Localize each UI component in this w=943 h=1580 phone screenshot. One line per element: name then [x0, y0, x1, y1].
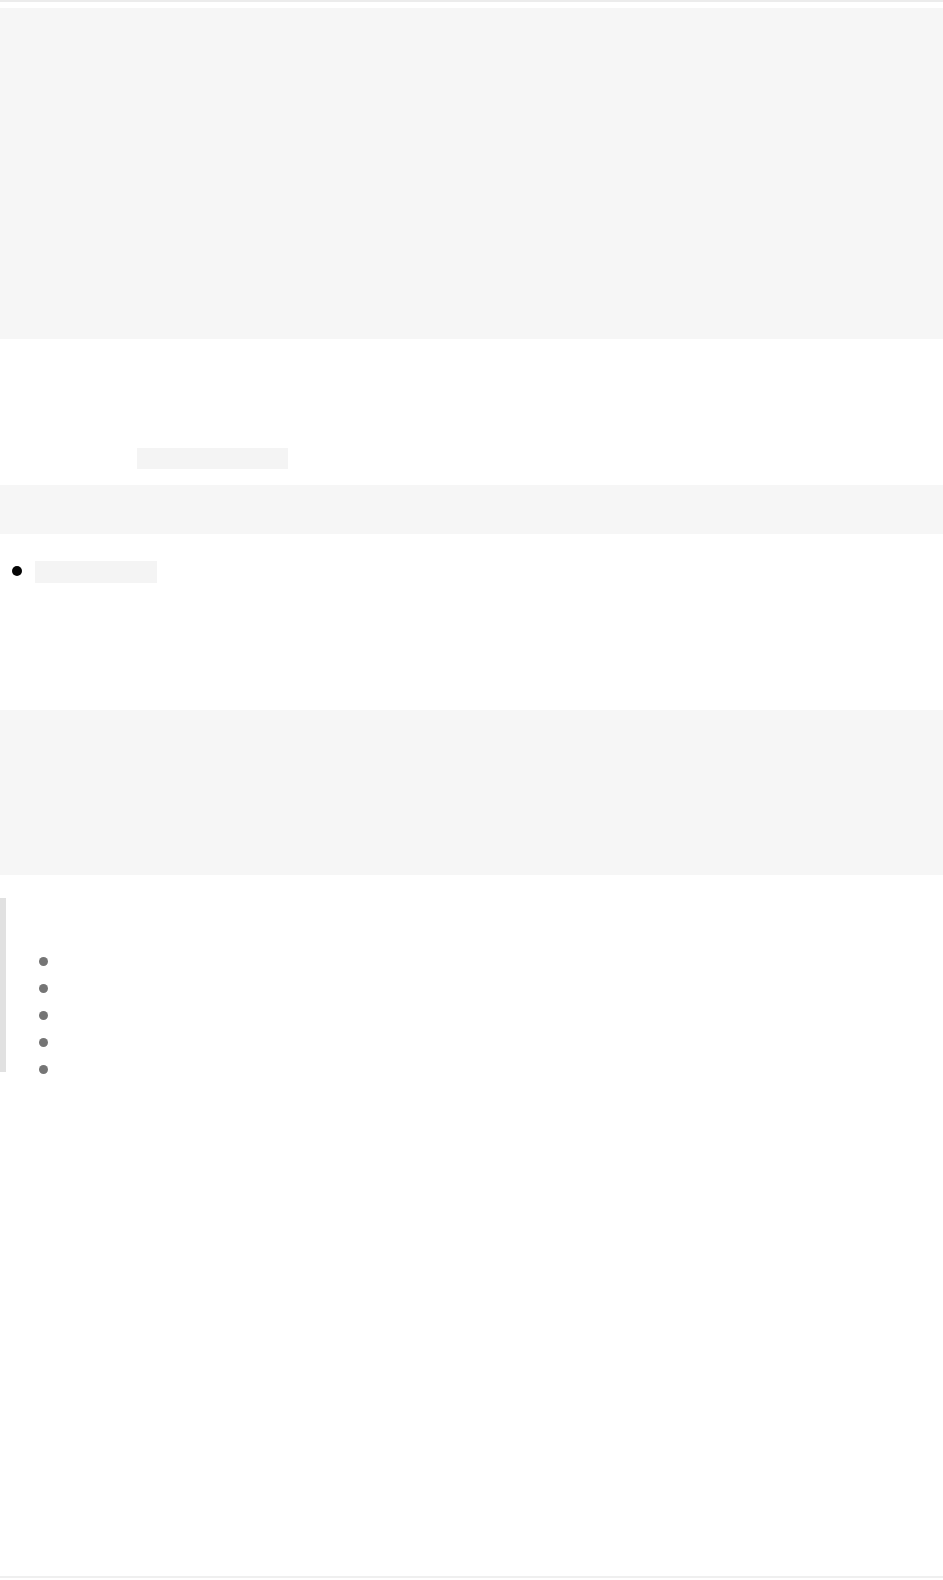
- other: Item 2: [39, 984, 48, 993]
- other: Item 4: [39, 1038, 48, 1047]
- button[interactable]: Item 2: [39, 975, 239, 1002]
- button[interactable]: Item 5: [39, 1056, 239, 1083]
- other: Item 3: [39, 1011, 48, 1020]
- button[interactable]: Item 4: [39, 1029, 239, 1056]
- other: Item 1: [39, 957, 48, 966]
- button[interactable]: List bullet: [0, 552, 943, 592]
- other: List bullet: [12, 566, 22, 576]
- other: Item 5: [39, 1065, 48, 1074]
- button[interactable]: Item 1: [39, 948, 239, 975]
- button[interactable]: Item 3: [39, 1002, 239, 1029]
